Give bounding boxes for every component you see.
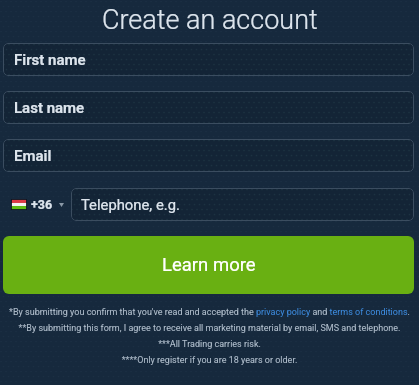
button[interactable]: Learn more	[3, 236, 414, 294]
staticText: **By submitting this form, I agree to re…	[0, 323, 419, 334]
staticText: *By submitting you confirm that you've r…	[0, 307, 419, 318]
staticText: Email	[14, 147, 52, 165]
button[interactable]: First name	[3, 43, 414, 76]
staticText: ***All Trading carries risk.	[0, 339, 419, 350]
staticText: Learn more	[162, 254, 256, 276]
button[interactable]: Last name	[3, 91, 414, 124]
button[interactable]: Telephone, e.g.	[71, 188, 414, 221]
staticText: Create an account	[102, 4, 318, 36]
staticText: First name	[14, 51, 86, 69]
staticText: Last name	[14, 99, 85, 117]
button[interactable]: Email	[3, 139, 414, 172]
button[interactable]: Select country code	[8, 188, 64, 221]
staticText: ****Only register if you are 18 years or…	[0, 355, 419, 366]
staticText: Telephone, e.g.	[81, 196, 180, 213]
staticText: +36	[31, 197, 53, 212]
